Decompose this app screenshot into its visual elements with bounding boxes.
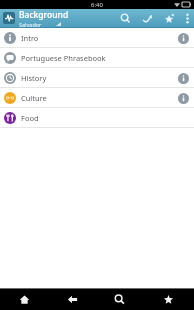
button[interactable]: Up xyxy=(2,11,16,25)
button[interactable]: Home xyxy=(0,289,49,310)
staticText: History xyxy=(21,73,176,83)
staticText: Portuguese Phrasebook xyxy=(21,53,190,63)
button[interactable]: Favorites xyxy=(158,9,180,27)
button[interactable]: Background xyxy=(19,9,114,27)
button[interactable]: More options xyxy=(180,9,194,27)
button[interactable]: Favorites xyxy=(143,289,194,310)
button[interactable]: Info xyxy=(176,71,190,85)
staticText: Salvador xyxy=(19,21,42,27)
staticText: Background xyxy=(19,9,69,21)
button[interactable]: Intro xyxy=(0,28,194,48)
button[interactable]: Search xyxy=(96,289,143,310)
button[interactable]: Culture xyxy=(0,88,194,108)
button[interactable]: History xyxy=(0,68,194,88)
button[interactable]: Food xyxy=(0,108,194,128)
button[interactable]: Edit xyxy=(136,9,158,27)
button[interactable]: Info xyxy=(176,31,190,45)
staticText: 6:40 xyxy=(91,1,103,9)
staticText: Food xyxy=(21,113,190,123)
staticText: Intro xyxy=(21,33,176,43)
button[interactable]: Search xyxy=(114,9,136,27)
button[interactable]: Info xyxy=(176,91,190,105)
button[interactable]: Back xyxy=(49,289,96,310)
button[interactable]: Portuguese Phrasebook xyxy=(0,48,194,68)
staticText: Culture xyxy=(21,93,176,103)
